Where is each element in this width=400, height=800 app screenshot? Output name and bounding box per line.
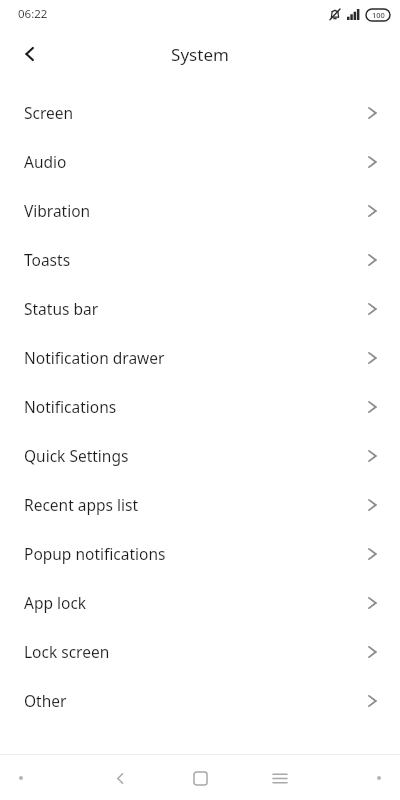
button[interactable]: Vibration	[0, 186, 400, 235]
staticText: Status bar	[24, 298, 367, 319]
button[interactable]: Lock screen	[0, 627, 400, 676]
button[interactable]: Recent apps	[262, 760, 298, 796]
staticText: Quick Settings	[24, 445, 367, 466]
button[interactable]: Popup notifications	[0, 529, 400, 578]
button[interactable]: Audio	[0, 137, 400, 186]
staticText: Other	[24, 690, 367, 711]
staticText: Audio	[24, 151, 367, 172]
button[interactable]: Screen	[0, 88, 400, 137]
button[interactable]: Recent apps list	[0, 480, 400, 529]
button[interactable]: Back	[10, 34, 50, 74]
button[interactable]: Notification drawer	[0, 333, 400, 382]
staticText: System	[171, 43, 229, 66]
staticText: Popup notifications	[24, 543, 367, 564]
staticText: 100	[372, 10, 385, 20]
button[interactable]: Notifications	[0, 382, 400, 431]
button[interactable]: Toasts	[0, 235, 400, 284]
staticText: Notification drawer	[24, 347, 367, 368]
button[interactable]: Menu dot left	[9, 766, 33, 790]
button[interactable]: App lock	[0, 578, 400, 627]
staticText: 06:22	[18, 6, 48, 22]
button[interactable]: Other	[0, 676, 400, 725]
staticText: Screen	[24, 102, 367, 123]
button[interactable]: Back	[102, 760, 138, 796]
staticText: Notifications	[24, 396, 367, 417]
button[interactable]: Home	[182, 760, 218, 796]
staticText: Toasts	[24, 249, 367, 270]
button[interactable]: Status bar	[0, 284, 400, 333]
staticText: App lock	[24, 592, 367, 613]
staticText: Recent apps list	[24, 494, 367, 515]
staticText: Vibration	[24, 200, 367, 221]
staticText: Lock screen	[24, 641, 367, 662]
button[interactable]: Quick Settings	[0, 431, 400, 480]
button[interactable]: Menu dot right	[367, 766, 391, 790]
